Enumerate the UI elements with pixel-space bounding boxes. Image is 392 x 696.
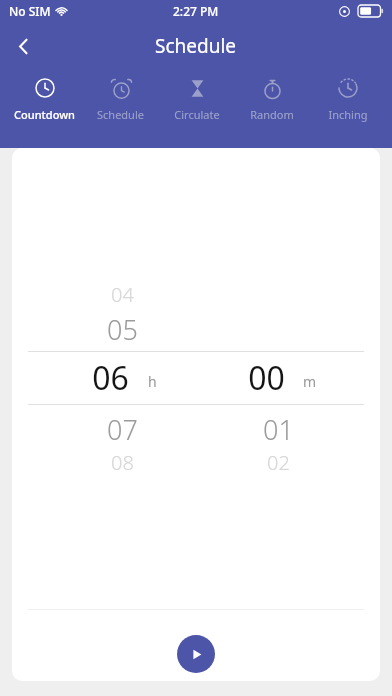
button[interactable]: Countdown — [8, 70, 81, 130]
button[interactable]: Random — [235, 70, 308, 130]
staticText: 00 — [248, 356, 285, 400]
staticText: 08 — [111, 449, 134, 476]
staticText: 05 — [107, 311, 138, 348]
staticText: h — [148, 372, 157, 391]
staticText: 06 — [92, 356, 129, 400]
button[interactable]: Start countdown — [177, 635, 215, 673]
staticText: m — [303, 372, 317, 391]
staticText: Schedule — [97, 107, 144, 122]
staticText: No SIM — [9, 3, 51, 19]
staticText: Schedule — [155, 33, 237, 59]
staticText: 01 — [263, 411, 294, 448]
button[interactable]: Back — [0, 23, 46, 69]
button[interactable]: Circulate — [160, 70, 233, 130]
staticText: Countdown — [14, 107, 75, 122]
staticText: 07 — [107, 411, 138, 448]
staticText: 2:27 PM — [173, 3, 219, 19]
staticText: Circulate — [174, 107, 220, 122]
button[interactable]: Schedule — [84, 70, 157, 130]
staticText: Inching — [328, 107, 368, 122]
staticText: 02 — [267, 449, 290, 476]
button[interactable]: Inching — [311, 70, 384, 130]
staticText: 04 — [111, 281, 134, 308]
staticText: Random — [250, 107, 294, 122]
